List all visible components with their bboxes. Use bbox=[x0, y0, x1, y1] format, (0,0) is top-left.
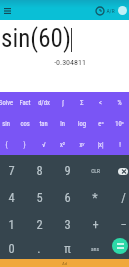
staticText: 3 bbox=[64, 217, 71, 232]
staticText: x² bbox=[60, 141, 65, 149]
staticText: sin bbox=[2, 120, 10, 128]
staticText: eˣ bbox=[98, 119, 104, 128]
staticText: -0.304811 bbox=[54, 58, 86, 67]
button[interactable]: . bbox=[25, 238, 53, 259]
staticText: sin(60) bbox=[1, 24, 71, 53]
staticText: 10ˣ bbox=[115, 119, 124, 128]
staticText: ( bbox=[5, 141, 8, 149]
staticText: . bbox=[37, 241, 41, 256]
staticText: % bbox=[117, 99, 122, 107]
button[interactable]: Solve bbox=[0, 92, 15, 113]
button[interactable]: 1 bbox=[0, 211, 25, 238]
staticText: 2 bbox=[36, 217, 43, 232]
staticText: Fact bbox=[19, 99, 31, 107]
button[interactable]: Equals bbox=[112, 238, 128, 254]
staticText: Ad bbox=[62, 261, 67, 266]
staticText: 6 bbox=[64, 190, 71, 205]
staticText: √ bbox=[42, 141, 46, 149]
button[interactable]: 7 bbox=[0, 157, 25, 184]
button[interactable]: ∫ bbox=[53, 92, 72, 113]
button[interactable]: π bbox=[53, 238, 81, 259]
button[interactable]: cos bbox=[15, 113, 34, 134]
staticText: + bbox=[92, 217, 99, 232]
button[interactable]: History bbox=[93, 4, 106, 17]
staticText: < bbox=[99, 99, 102, 107]
staticText: CLR bbox=[91, 168, 100, 174]
button[interactable]: d/dx bbox=[34, 92, 53, 113]
button[interactable]: − bbox=[109, 211, 129, 238]
staticText: / bbox=[121, 190, 126, 205]
button[interactable]: eˣ bbox=[91, 113, 110, 134]
button[interactable]: 2 bbox=[25, 211, 53, 238]
staticText: Solve bbox=[0, 99, 13, 107]
button[interactable]: sin bbox=[0, 113, 15, 134]
staticText: ∫ bbox=[62, 99, 64, 107]
staticText: d/dx bbox=[38, 99, 50, 107]
button[interactable]: log bbox=[72, 113, 91, 134]
button[interactable]: ) bbox=[15, 134, 34, 155]
staticText: 1 bbox=[8, 217, 15, 232]
button[interactable]: 3 bbox=[53, 211, 81, 238]
button[interactable]: ( bbox=[0, 134, 15, 155]
button[interactable]: 9 bbox=[53, 157, 81, 184]
staticText: |x| bbox=[97, 141, 104, 149]
staticText: tan bbox=[39, 120, 48, 128]
staticText: cos bbox=[20, 120, 30, 128]
button[interactable]: 5 bbox=[25, 184, 53, 211]
staticText: ) bbox=[23, 141, 26, 149]
staticText: π bbox=[64, 241, 71, 256]
button[interactable]: tan bbox=[34, 113, 53, 134]
staticText: ! bbox=[119, 141, 121, 149]
button[interactable] bbox=[109, 238, 129, 259]
button[interactable]: x² bbox=[53, 134, 72, 155]
button[interactable]: xʸ bbox=[72, 134, 91, 155]
staticText: * bbox=[92, 190, 98, 205]
button[interactable]: Angle unit toggle bbox=[116, 4, 129, 17]
button[interactable]: 0 bbox=[0, 238, 25, 259]
button[interactable]: * bbox=[81, 184, 109, 211]
button[interactable]: 10ˣ bbox=[110, 113, 129, 134]
button[interactable]: √ bbox=[34, 134, 53, 155]
button[interactable]: 4 bbox=[0, 184, 25, 211]
button[interactable]: |x| bbox=[91, 134, 110, 155]
staticText: 8 bbox=[36, 163, 43, 178]
button[interactable]: Backspace bbox=[109, 157, 129, 184]
other: Backspace bbox=[116, 164, 129, 178]
staticText: log bbox=[78, 120, 86, 128]
button[interactable]: 8 bbox=[25, 157, 53, 184]
button[interactable]: + bbox=[81, 211, 109, 238]
button[interactable]: Fact bbox=[15, 92, 34, 113]
button[interactable]: Σ bbox=[72, 92, 91, 113]
button[interactable]: / bbox=[109, 184, 129, 211]
button[interactable]: % bbox=[110, 92, 129, 113]
button[interactable]: ln bbox=[53, 113, 72, 134]
button[interactable]: 6 bbox=[53, 184, 81, 211]
button[interactable]: CLR bbox=[81, 157, 109, 184]
button[interactable]: ! bbox=[110, 134, 129, 155]
staticText: 0 bbox=[8, 241, 15, 256]
button[interactable]: Open navigation menu bbox=[2, 5, 13, 16]
staticText: − bbox=[120, 217, 127, 232]
staticText: 7 bbox=[8, 163, 15, 178]
staticText: 5 bbox=[36, 190, 43, 205]
button[interactable]: < bbox=[91, 92, 110, 113]
button[interactable]: ans bbox=[81, 238, 109, 259]
staticText: 4 bbox=[8, 190, 15, 205]
staticText: xʸ bbox=[79, 140, 85, 149]
staticText: 9 bbox=[64, 163, 71, 178]
staticText: A/R bbox=[106, 8, 115, 14]
staticText: ln bbox=[60, 120, 65, 128]
staticText: ans bbox=[91, 246, 99, 252]
staticText: Σ bbox=[80, 99, 84, 107]
